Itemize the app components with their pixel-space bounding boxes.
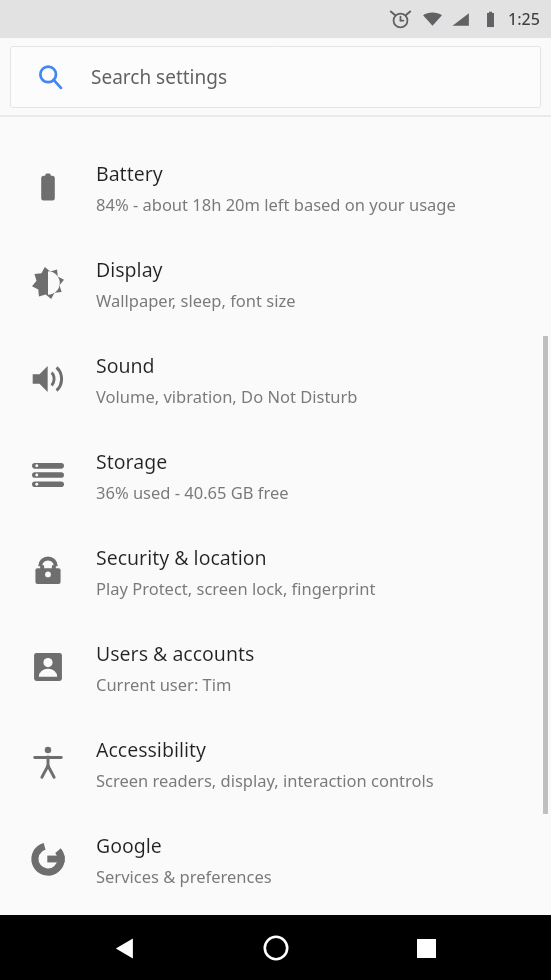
staticText: Play Protect, screen lock, fingerprint — [96, 577, 376, 599]
button[interactable]: Home — [247, 919, 305, 977]
staticText: Battery — [96, 160, 163, 187]
staticText: Sound — [96, 352, 155, 379]
staticText: Accessibility — [96, 736, 206, 763]
staticText: Users & accounts — [96, 640, 255, 667]
staticText: Security & location — [96, 544, 267, 571]
staticText: 1:25 — [508, 8, 540, 30]
button[interactable]: Google — [0, 811, 551, 907]
staticText: Services & preferences — [96, 865, 272, 887]
staticText: Display — [96, 256, 163, 283]
button[interactable]: Battery — [0, 139, 551, 235]
staticText: Search settings — [91, 64, 228, 90]
button[interactable]: Display — [0, 235, 551, 331]
staticText: Wallpaper, sleep, font size — [96, 289, 296, 311]
button[interactable]: Back — [96, 919, 154, 977]
button[interactable]: Search settings — [10, 46, 541, 108]
staticText: Current user: Tim — [96, 673, 232, 695]
button[interactable]: Security & location — [0, 523, 551, 619]
button[interactable]: Recent apps — [397, 919, 455, 977]
button[interactable]: Sound — [0, 331, 551, 427]
staticText: Screen readers, display, interaction con… — [96, 769, 434, 791]
staticText: Volume, vibration, Do Not Disturb — [96, 385, 358, 407]
staticText: Google — [96, 832, 162, 859]
button[interactable]: Accessibility — [0, 715, 551, 811]
button[interactable]: Users & accounts — [0, 619, 551, 715]
staticText: Storage — [96, 448, 168, 475]
staticText: 36% used - 40.65 GB free — [96, 481, 289, 503]
button[interactable]: Storage — [0, 427, 551, 523]
staticText: 84% - about 18h 20m left based on your u… — [96, 193, 456, 215]
